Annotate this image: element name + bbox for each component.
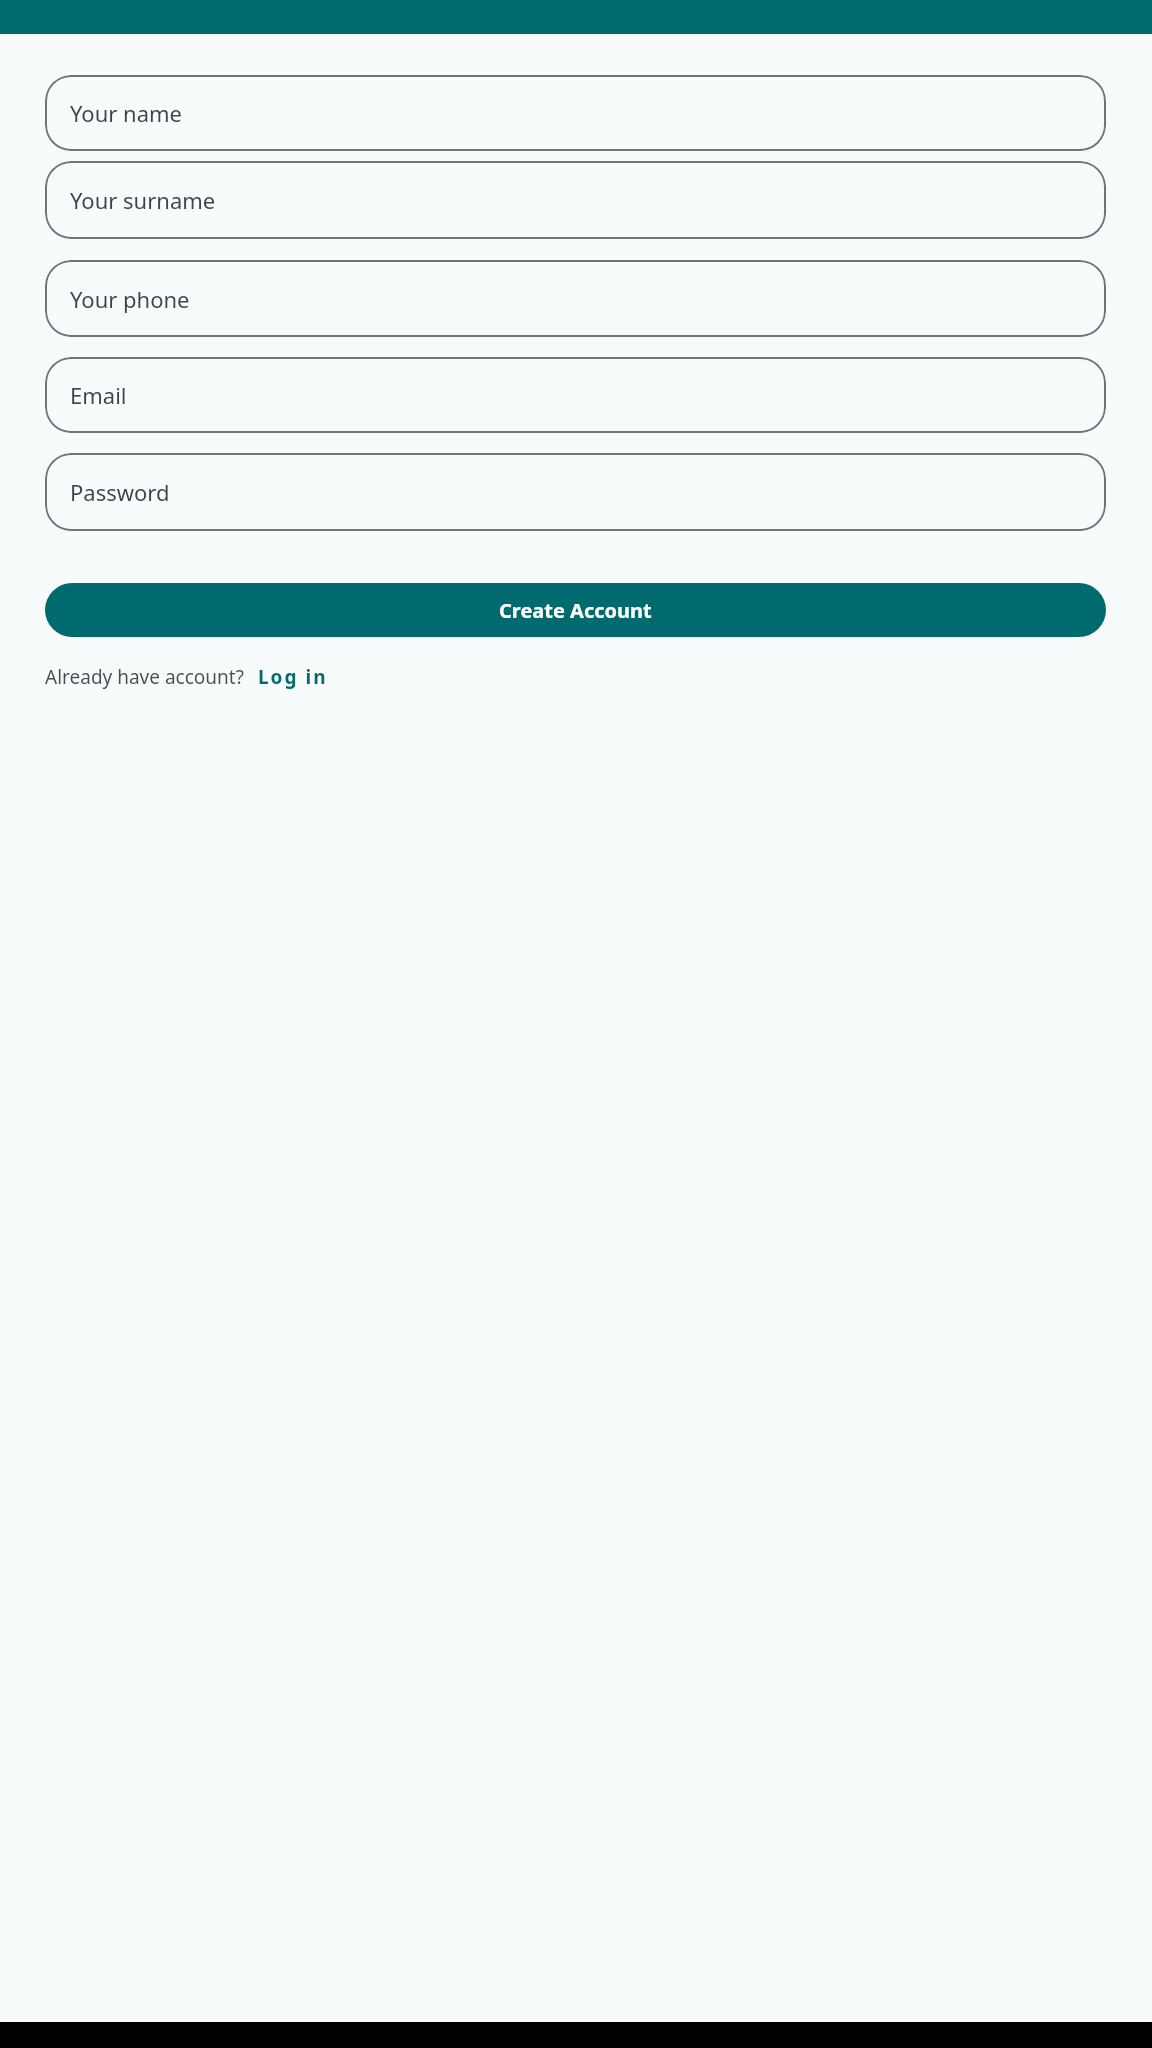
button[interactable]: Create Account — [45, 583, 1106, 637]
button[interactable]: Your name — [45, 75, 1106, 151]
button[interactable]: Password — [45, 453, 1106, 531]
staticText: Log in — [258, 664, 328, 690]
staticText: Password — [70, 477, 170, 507]
button[interactable]: Log in — [256, 662, 330, 692]
staticText: Your name — [70, 98, 182, 128]
button[interactable]: Your phone — [45, 260, 1106, 337]
staticText: Your phone — [70, 284, 190, 314]
staticText: Your surname — [70, 185, 216, 215]
button[interactable]: Your surname — [45, 161, 1106, 239]
staticText: Email — [70, 380, 127, 410]
staticText: Create Account — [499, 597, 652, 624]
button[interactable]: Email — [45, 357, 1106, 433]
staticText: Already have account? — [45, 664, 244, 690]
